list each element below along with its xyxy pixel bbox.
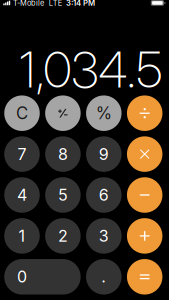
button[interactable]: 1	[4, 218, 40, 254]
staticText: 8	[58, 144, 68, 164]
staticText: 4	[17, 185, 27, 205]
staticText: %	[96, 103, 112, 123]
staticText: 3:14 PM	[66, 0, 95, 8]
staticText: 5	[58, 185, 68, 205]
staticText: T-Mobile	[13, 0, 44, 7]
button[interactable]: Minus	[127, 177, 162, 213]
staticText: C	[16, 103, 28, 123]
button[interactable]: Multiply	[127, 136, 162, 172]
button[interactable]: 5	[45, 177, 81, 213]
button[interactable]: 3	[86, 218, 121, 254]
button[interactable]: C	[4, 95, 40, 131]
button[interactable]: %	[86, 95, 122, 131]
staticText: 0	[17, 267, 27, 286]
staticText: 1,034.5	[19, 40, 162, 99]
button[interactable]: 4	[4, 177, 40, 213]
button[interactable]: 6	[86, 177, 121, 213]
staticText: 3	[99, 226, 109, 246]
staticText: 6	[99, 185, 109, 205]
staticText: .	[101, 267, 106, 286]
staticText: 2	[58, 226, 68, 246]
button[interactable]: 2	[45, 218, 81, 254]
button[interactable]: 7	[4, 136, 40, 172]
button[interactable]: Equals	[127, 259, 162, 294]
button[interactable]: Plus	[127, 218, 162, 254]
button[interactable]: 0	[4, 259, 81, 294]
button[interactable]: .	[86, 259, 122, 294]
button[interactable]: 9	[86, 136, 121, 172]
button[interactable]: Plus minus	[45, 95, 81, 131]
button[interactable]: Divide	[127, 95, 162, 131]
button[interactable]: 8	[45, 136, 81, 172]
staticText: 9	[99, 144, 109, 164]
staticText: 7	[17, 144, 26, 164]
staticText: LTE	[49, 0, 62, 7]
staticText: 1	[18, 226, 25, 246]
